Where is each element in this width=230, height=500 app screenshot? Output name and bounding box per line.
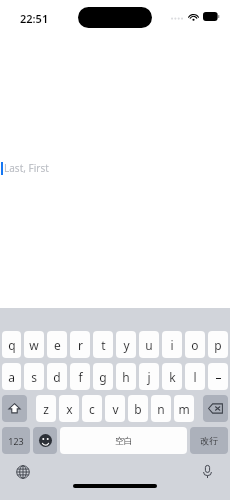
staticText: 123 [8, 435, 24, 447]
staticText: 空白 [115, 435, 133, 446]
staticText: n [157, 401, 165, 417]
staticText: p [214, 337, 222, 353]
staticText: w [29, 337, 39, 353]
button[interactable]: j [139, 363, 159, 390]
staticText: i [170, 337, 174, 353]
button[interactable]: t [93, 331, 113, 358]
staticText: a [8, 369, 15, 385]
button[interactable]: n [151, 395, 171, 422]
staticText: 改行 [200, 435, 218, 446]
staticText: b [134, 401, 142, 417]
button[interactable]: e [47, 331, 67, 358]
button[interactable]: f [70, 363, 90, 390]
staticText: o [191, 337, 199, 353]
staticText: k [169, 369, 176, 385]
button[interactable]: p [208, 331, 228, 358]
staticText: j [147, 369, 151, 385]
staticText: Last, First [4, 161, 49, 175]
button[interactable]: r [70, 331, 90, 358]
button[interactable]: c [82, 395, 102, 422]
staticText: m [178, 401, 190, 417]
staticText: z [43, 401, 49, 417]
staticText: e [54, 337, 61, 353]
button[interactable]: b [128, 395, 148, 422]
button[interactable]: 改行 [190, 427, 228, 454]
button[interactable]: g [93, 363, 113, 390]
staticText: 22:51 [20, 11, 49, 26]
button[interactable]: o [185, 331, 205, 358]
button[interactable]: m [174, 395, 194, 422]
button[interactable]: x [59, 395, 79, 422]
staticText: d [53, 369, 61, 385]
button[interactable]: Change keyboard language [13, 462, 33, 482]
staticText: u [145, 337, 153, 353]
staticText: l [193, 369, 197, 385]
button[interactable]: – [208, 363, 228, 390]
staticText: x [66, 401, 73, 417]
staticText: f [78, 369, 83, 385]
button[interactable]: z [36, 395, 56, 422]
staticText: q [8, 337, 16, 353]
button[interactable]: s [24, 363, 44, 390]
button[interactable]: i [162, 331, 182, 358]
staticText: – [215, 369, 222, 385]
button[interactable]: Backspace [203, 395, 228, 422]
button[interactable]: y [116, 331, 136, 358]
button[interactable]: w [24, 331, 44, 358]
staticText: r [78, 337, 83, 353]
button[interactable]: Dictation [197, 462, 217, 482]
button[interactable]: l [185, 363, 205, 390]
button[interactable]: k [162, 363, 182, 390]
staticText: c [89, 401, 95, 417]
staticText: t [101, 337, 106, 353]
button[interactable]: d [47, 363, 67, 390]
button[interactable]: 123 [2, 427, 30, 454]
button[interactable]: h [116, 363, 136, 390]
staticText: h [122, 369, 130, 385]
staticText: y [123, 337, 130, 353]
button[interactable]: q [2, 331, 21, 358]
button[interactable]: Shift [2, 395, 27, 422]
staticText: v [112, 401, 119, 417]
button[interactable]: Last, First [0, 158, 230, 178]
staticText: g [99, 369, 107, 385]
button[interactable]: a [2, 363, 21, 390]
button[interactable]: 空白 [60, 427, 187, 454]
button[interactable]: u [139, 331, 159, 358]
button[interactable]: Emoji [33, 427, 57, 454]
staticText: s [31, 369, 37, 385]
button[interactable]: v [105, 395, 125, 422]
